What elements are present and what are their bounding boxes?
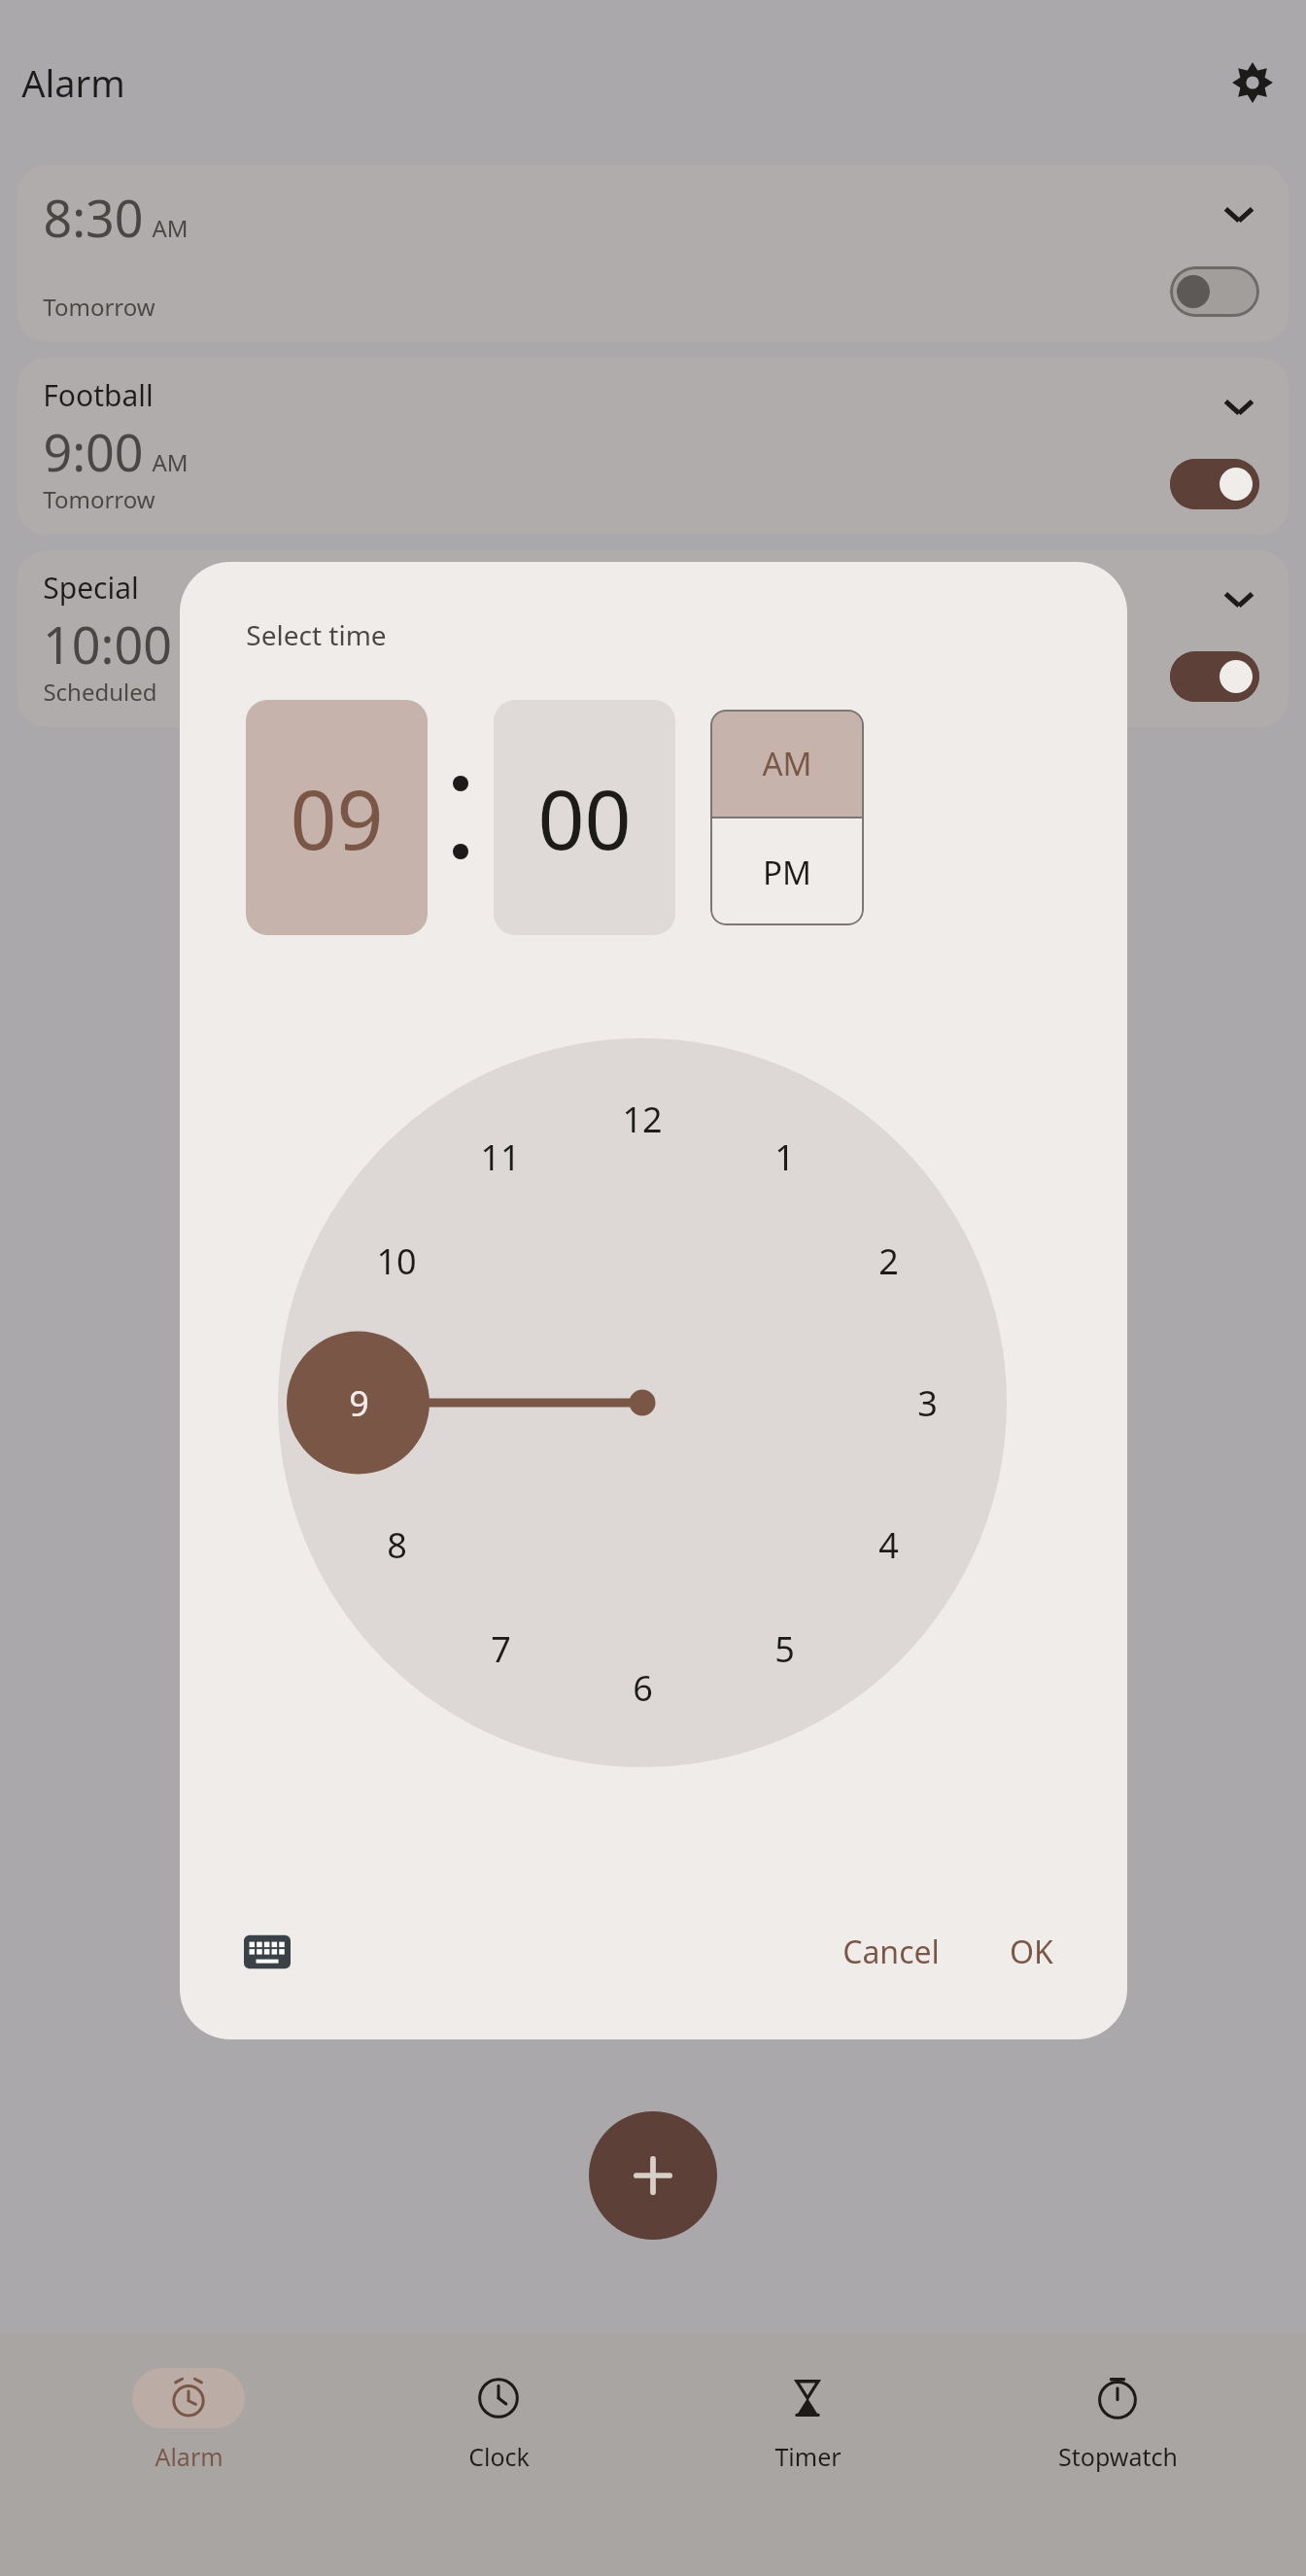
button[interactable]: 00 xyxy=(494,700,675,935)
button[interactable]: 12 xyxy=(603,1080,681,1158)
button[interactable]: Settings xyxy=(1220,51,1285,115)
button[interactable]: 1 xyxy=(745,1118,823,1196)
button[interactable]: 4 xyxy=(849,1506,927,1584)
staticText: Football xyxy=(43,375,154,415)
staticText: 9 xyxy=(349,1379,369,1427)
button[interactable]: Special xyxy=(17,550,1289,727)
button[interactable] xyxy=(278,1038,1007,1767)
staticText: 8 xyxy=(387,1521,407,1569)
button[interactable] xyxy=(278,1038,1007,1767)
button[interactable]: 7 xyxy=(462,1610,539,1688)
button[interactable]: 6 xyxy=(603,1649,681,1726)
button[interactable]: Clock xyxy=(377,2368,620,2473)
staticText: 4 xyxy=(878,1521,899,1569)
button[interactable]: 8:30 xyxy=(17,165,1289,342)
staticText: 1 xyxy=(774,1133,795,1181)
staticText: Clock xyxy=(468,2440,530,2473)
button[interactable]: 10 xyxy=(358,1222,435,1300)
staticText: Tomorrow xyxy=(43,483,155,515)
button[interactable] xyxy=(278,1038,1007,1767)
staticText: 11 xyxy=(480,1133,521,1181)
button[interactable]: Add alarm xyxy=(589,2111,717,2240)
staticText: 2 xyxy=(878,1237,899,1285)
staticText: 9:00 xyxy=(43,417,144,486)
staticText: Tomorrow xyxy=(43,291,155,323)
staticText: PM xyxy=(763,851,811,894)
staticText: 00 xyxy=(537,762,632,873)
button[interactable] xyxy=(278,1038,1007,1767)
button[interactable]: 2 xyxy=(849,1222,927,1300)
button[interactable]: PM xyxy=(710,818,864,925)
button[interactable]: 9 xyxy=(320,1364,397,1442)
staticText: 09 xyxy=(290,762,384,873)
button[interactable]: 8 xyxy=(358,1506,435,1584)
staticText: Cancel xyxy=(842,1931,940,1973)
button[interactable] xyxy=(278,1038,1007,1767)
staticText: Alarm xyxy=(21,57,125,108)
staticText: Timer xyxy=(774,2440,842,2473)
staticText: 5 xyxy=(774,1625,795,1673)
button[interactable] xyxy=(278,1038,1007,1767)
staticText: OK xyxy=(1010,1931,1053,1973)
staticText: Alarm xyxy=(155,2440,223,2473)
button[interactable] xyxy=(278,1038,1007,1767)
button[interactable]: 11 xyxy=(462,1118,539,1196)
staticText: 10:00 xyxy=(43,609,172,679)
staticText: Stopwatch xyxy=(1058,2440,1178,2473)
staticText: 12 xyxy=(622,1096,663,1143)
staticText: 7 xyxy=(491,1625,511,1673)
button[interactable]: Timer xyxy=(686,2368,929,2473)
button[interactable]: AM xyxy=(710,710,864,817)
staticText: 6 xyxy=(633,1664,653,1712)
button[interactable]: Alarm xyxy=(67,2368,310,2473)
staticText: Special xyxy=(43,568,139,608)
button[interactable]: Stopwatch xyxy=(996,2368,1239,2473)
button[interactable] xyxy=(278,1038,1007,1767)
button[interactable] xyxy=(278,1038,1007,1767)
staticText: 3 xyxy=(917,1379,938,1427)
staticText: 10 xyxy=(376,1237,417,1285)
button[interactable]: 5 xyxy=(745,1610,823,1688)
button[interactable] xyxy=(278,1038,1007,1767)
button[interactable]: OK xyxy=(986,1917,1077,1987)
button[interactable] xyxy=(278,1038,1007,1767)
button[interactable]: Football xyxy=(17,358,1289,535)
button[interactable] xyxy=(1170,459,1259,509)
button[interactable]: Switch to text input xyxy=(230,1915,304,1989)
button[interactable]: Cancel xyxy=(819,1917,963,1987)
staticText: 8:30 xyxy=(43,183,144,252)
button[interactable] xyxy=(1170,266,1259,317)
button[interactable]: 3 xyxy=(888,1364,966,1442)
staticText: Scheduled xyxy=(43,676,157,708)
staticText: AM xyxy=(152,446,189,478)
button[interactable]: 09 xyxy=(246,700,428,935)
staticText: Select time xyxy=(246,616,387,653)
staticText: AM xyxy=(762,742,812,785)
button[interactable] xyxy=(1170,651,1259,702)
button[interactable] xyxy=(278,1038,1007,1767)
staticText: AM xyxy=(152,212,189,244)
